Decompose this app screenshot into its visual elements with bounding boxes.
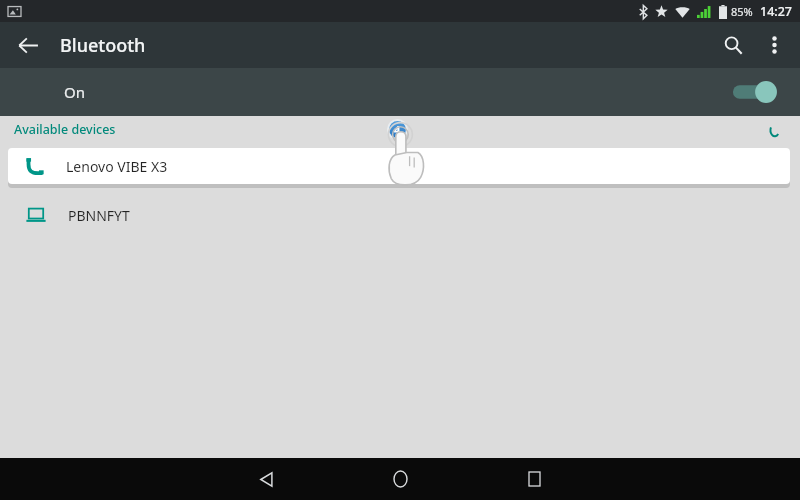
button[interactable]: Back bbox=[227, 458, 305, 500]
staticText: On bbox=[64, 82, 85, 102]
button[interactable]: Home bbox=[361, 458, 439, 500]
staticText: PBNNFYT bbox=[68, 206, 130, 225]
button[interactable]: More options bbox=[754, 25, 794, 65]
staticText: 14:27 bbox=[760, 3, 793, 20]
button[interactable]: Recent apps bbox=[495, 458, 573, 500]
button[interactable]: On bbox=[0, 68, 800, 116]
staticText: 85% bbox=[731, 4, 753, 19]
other: Bluetooth toggle bbox=[732, 79, 778, 105]
button[interactable]: Lenovo VIBE X3 bbox=[8, 148, 790, 184]
staticText: Bluetooth bbox=[60, 33, 146, 58]
staticText: 4 bbox=[394, 122, 401, 137]
button[interactable]: Search bbox=[712, 24, 754, 66]
button[interactable]: PBNNFYT bbox=[0, 196, 800, 234]
button[interactable]: Back bbox=[8, 25, 48, 65]
staticText: Available devices bbox=[14, 121, 116, 138]
staticText: Lenovo VIBE X3 bbox=[66, 157, 168, 176]
